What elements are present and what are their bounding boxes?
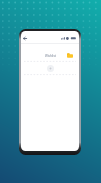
button[interactable]: Back [22,35,28,41]
staticText: Wishlist [45,54,56,58]
button[interactable]: Add [24,61,76,75]
other: Add [47,65,54,72]
button[interactable]: Folder [67,53,73,58]
